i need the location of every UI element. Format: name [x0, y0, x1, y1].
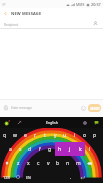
button[interactable]: Keyboard layout	[92, 118, 101, 127]
staticText: Recipient	[4, 22, 19, 26]
staticText: u	[63, 132, 67, 139]
staticText: t	[44, 132, 46, 139]
staticText: v	[47, 160, 50, 167]
button[interactable]: SEND	[88, 104, 101, 112]
button[interactable]: j	[65, 142, 75, 156]
staticText: Enter message	[11, 106, 32, 110]
button[interactable]: k	[75, 142, 85, 156]
button[interactable]: z	[13, 156, 23, 170]
button[interactable]: Add recipient from contacts	[91, 19, 100, 28]
button[interactable]: Attach file	[1, 103, 11, 113]
button[interactable]: Delete	[83, 156, 96, 170]
button[interactable]: w	[10, 128, 20, 142]
staticText: j	[69, 146, 71, 153]
staticText: SEND	[90, 106, 100, 111]
staticText: c	[37, 160, 40, 167]
button[interactable]: g	[45, 142, 55, 156]
staticText: .	[70, 174, 72, 181]
button[interactable]: Settings	[80, 118, 89, 127]
button[interactable]: Shift	[0, 156, 13, 170]
staticText: 20:57	[91, 2, 101, 7]
staticText: EN	[26, 175, 31, 180]
button[interactable]: o	[80, 128, 90, 142]
staticText: e	[24, 132, 27, 139]
staticText: i	[74, 132, 76, 139]
button[interactable]: Stickers	[2, 118, 11, 127]
staticText: s	[19, 146, 22, 153]
button[interactable]: c	[33, 156, 43, 170]
staticText: n	[66, 160, 70, 167]
staticText: m	[76, 160, 81, 167]
button[interactable]: h	[55, 142, 65, 156]
button[interactable]: n	[63, 156, 73, 170]
button[interactable]: u	[60, 128, 70, 142]
staticText: b	[56, 160, 60, 167]
staticText: l	[89, 146, 91, 153]
staticText: y	[54, 132, 57, 139]
staticText: k	[79, 146, 82, 153]
button[interactable]: EN	[23, 170, 33, 183]
staticText: q	[3, 132, 7, 139]
button[interactable]: x	[23, 156, 33, 170]
button[interactable]: t	[40, 128, 50, 142]
button[interactable]: Themes	[15, 118, 24, 127]
button[interactable]: l	[85, 142, 95, 156]
button[interactable]: Emoji	[79, 104, 87, 112]
staticText: h	[58, 146, 62, 153]
staticText: f	[39, 146, 41, 153]
button[interactable]: 123	[0, 170, 13, 183]
button[interactable]: i	[70, 128, 80, 142]
button[interactable]: y	[50, 128, 60, 142]
button[interactable]: a	[5, 142, 15, 156]
button[interactable]: v	[43, 156, 53, 170]
button[interactable]: b	[53, 156, 63, 170]
button[interactable]: Back	[0, 8, 10, 18]
staticText: a	[9, 146, 12, 153]
button[interactable]: q	[0, 128, 10, 142]
staticText: w	[13, 132, 17, 139]
staticText: d	[28, 146, 32, 153]
staticText: NEW MESSAGE	[11, 11, 42, 16]
staticText: x	[27, 160, 30, 167]
button[interactable]: s	[15, 142, 25, 156]
button[interactable]: d	[25, 142, 35, 156]
staticText: English	[46, 120, 58, 125]
staticText: p	[93, 132, 97, 139]
staticText: o	[83, 132, 87, 139]
button[interactable]: e	[20, 128, 30, 142]
staticText: 123	[3, 175, 10, 180]
staticText: z	[17, 160, 20, 167]
button[interactable]: Enter	[76, 170, 89, 183]
button[interactable]: p	[90, 128, 100, 142]
button[interactable]: .	[66, 170, 76, 183]
staticText: r	[34, 132, 37, 139]
button[interactable]: r	[30, 128, 40, 142]
button[interactable]: m	[73, 156, 83, 170]
button[interactable]: f	[35, 142, 45, 156]
staticText: g	[48, 146, 52, 153]
button[interactable]: Emoji keyboard	[13, 170, 23, 183]
staticText: MMS	[76, 2, 85, 7]
